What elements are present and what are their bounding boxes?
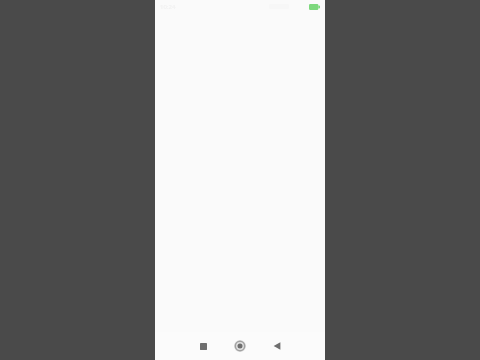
button[interactable]: Home: [225, 332, 255, 360]
button[interactable]: Back: [262, 332, 292, 360]
button[interactable]: Recent apps: [188, 332, 218, 360]
other: Battery: [309, 4, 320, 10]
